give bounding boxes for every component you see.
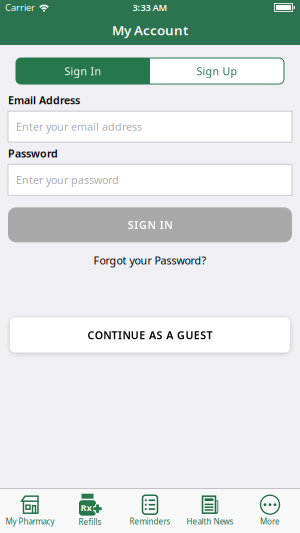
staticText: My Pharmacy xyxy=(5,516,54,527)
staticText: Forgot your Password? xyxy=(93,253,206,267)
button[interactable]: Forgot your Password? xyxy=(89,249,210,271)
staticText: More xyxy=(260,516,280,527)
staticText: Enter your password xyxy=(16,173,119,187)
staticText: Rx xyxy=(80,501,91,514)
staticText: SIGN IN xyxy=(128,218,172,232)
staticText: Health News xyxy=(186,516,233,527)
staticText: Reminders xyxy=(129,516,170,527)
button[interactable]: SIGN IN xyxy=(8,207,292,242)
staticText: 3:33 AM xyxy=(132,1,167,14)
button[interactable]: Rx xyxy=(60,490,120,531)
staticText: Sign Up xyxy=(196,64,237,78)
staticText: CONTINUE AS A GUEST xyxy=(87,328,213,342)
staticText: My Account xyxy=(112,21,188,39)
staticText: Enter your email address xyxy=(16,120,142,134)
button[interactable]: Sign Up xyxy=(150,58,284,84)
staticText: Sign In xyxy=(64,64,101,78)
button[interactable]: More xyxy=(240,490,300,531)
button[interactable]: Sign In xyxy=(16,58,150,84)
staticText: Carrier xyxy=(5,1,35,14)
button[interactable]: CONTINUE AS A GUEST xyxy=(10,317,290,352)
button[interactable]: Enter your email address xyxy=(8,111,292,142)
button[interactable]: My Pharmacy xyxy=(0,490,60,531)
button[interactable]: Reminders xyxy=(120,490,180,531)
button[interactable]: Enter your password xyxy=(8,164,292,195)
staticText: Password xyxy=(8,146,58,160)
button[interactable]: Health News xyxy=(180,490,240,531)
staticText: Refills xyxy=(78,517,101,527)
staticText: Email Address xyxy=(8,93,80,107)
